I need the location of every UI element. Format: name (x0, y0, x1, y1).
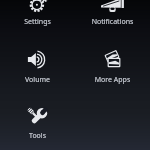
staticText: Notifications (75, 17, 150, 27)
staticText: More Apps (75, 75, 150, 85)
button[interactable]: Tools (0, 0, 75, 150)
button[interactable]: Notifications (75, 0, 150, 150)
staticText: Tools (0, 131, 75, 141)
staticText: Volume (0, 75, 75, 85)
button[interactable]: Settings (0, 0, 75, 150)
staticText: Settings (0, 17, 75, 27)
button[interactable]: More Apps (75, 0, 150, 150)
button[interactable]: Volume (0, 0, 75, 150)
